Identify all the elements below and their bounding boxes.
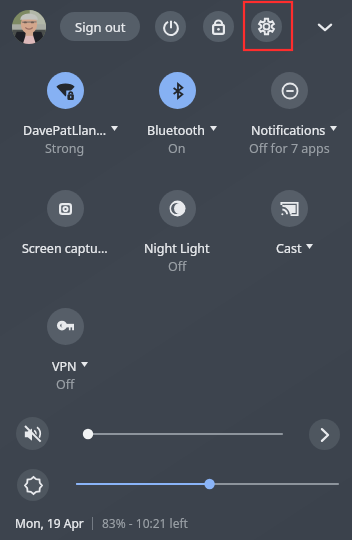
staticText: DavePatLlan… — [23, 122, 107, 139]
staticText: VPN — [52, 358, 77, 375]
staticText: Notifications — [251, 122, 326, 139]
button[interactable]: Sign out — [60, 12, 140, 41]
button[interactable]: Brightness — [17, 469, 49, 501]
staticText: On — [168, 140, 186, 157]
staticText: Mon, 19 Apr — [15, 515, 84, 531]
button[interactable]: Collapse menu — [309, 11, 340, 42]
staticText: 83% - 10:21 left — [102, 515, 188, 531]
button[interactable]: Settings — [251, 11, 282, 42]
button[interactable]: Cast — [233, 190, 345, 257]
button[interactable]: 83% - 10:21 left — [102, 512, 188, 534]
button[interactable]: Notifications — [233, 72, 345, 157]
button[interactable]: Screen captu… — [9, 190, 121, 257]
staticText: Off — [56, 376, 75, 393]
staticText: Screen captu… — [22, 240, 108, 257]
staticText: Off — [168, 258, 187, 275]
button[interactable]: Brightness level — [70, 476, 338, 492]
staticText: Cast — [276, 240, 302, 257]
button[interactable]: Power — [155, 11, 186, 42]
button[interactable]: Bluetooth — [121, 72, 233, 157]
button[interactable]: Account — [12, 10, 46, 44]
button[interactable]: Volume — [80, 426, 282, 442]
staticText: Sign out — [75, 18, 126, 36]
button[interactable]: Night Light — [121, 190, 233, 275]
button[interactable]: DavePatLlan… — [9, 72, 121, 157]
button[interactable]: Lock screen — [203, 11, 234, 42]
staticText: Night Light — [144, 240, 210, 257]
button[interactable]: Unmute — [16, 417, 49, 450]
staticText: Bluetooth — [147, 122, 206, 139]
button[interactable]: Mon, 19 Apr — [15, 512, 84, 534]
staticText: Strong — [45, 140, 85, 157]
staticText: Off for 7 apps — [249, 140, 330, 157]
button[interactable]: VPN — [9, 308, 121, 393]
button[interactable]: Audio settings — [309, 419, 340, 450]
